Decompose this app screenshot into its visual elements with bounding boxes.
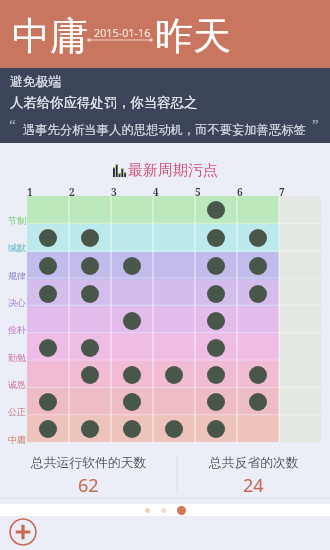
staticText: 24 [243,473,264,498]
staticText: 3 [111,185,117,199]
staticText: 规律 [8,270,26,281]
button[interactable]: 总共反省的次数 [177,450,330,499]
staticText: 诚恳 [8,379,26,390]
staticText: 2 [69,185,75,199]
staticText: 俭朴 [8,324,26,335]
staticText: 2015-01-16 [94,25,151,40]
staticText: 勤勉 [8,352,26,363]
staticText: 5 [195,185,201,199]
staticText: 4 [153,185,159,199]
staticText: 总共运行软件的天数 [31,455,147,471]
staticText: 避免极端 [10,74,62,90]
staticText: 1 [27,185,33,199]
staticText: 总共反省的次数 [209,455,299,471]
staticText: “ [9,114,16,134]
staticText: ” [312,114,319,134]
staticText: 昨天 [155,12,231,60]
staticText: 最新周期污点 [128,161,218,179]
staticText: 中庸 [12,12,88,60]
staticText: 中庸 [8,434,26,445]
button[interactable]: 总共运行软件的天数 [0,450,177,499]
staticText: 决心 [8,297,26,308]
staticText: 62 [78,473,99,498]
staticText: 7 [279,185,285,199]
staticText: 人若给你应得处罚，你当容忍之 [10,94,198,111]
staticText: 缄默 [8,242,26,253]
staticText: 遇事先分析当事人的思想动机，而不要妄加善恶标签 [23,122,306,137]
staticText: 6 [237,185,243,199]
staticText: 公正 [8,406,26,417]
button[interactable]: Add [9,518,37,546]
staticText: 节制 [8,215,26,226]
